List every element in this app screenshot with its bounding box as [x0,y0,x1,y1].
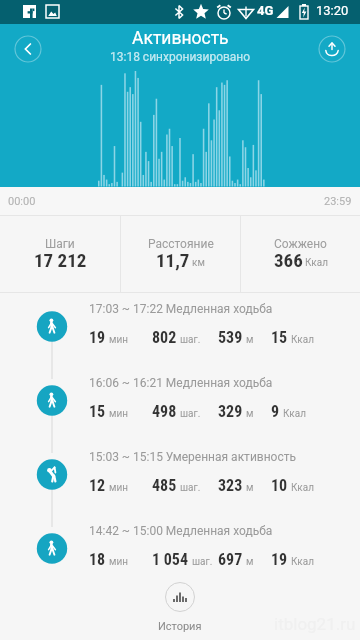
button[interactable]: Расстояние [121,216,240,292]
staticText: 4G [257,3,274,18]
button[interactable]: История [158,582,202,633]
staticText: шаг. [180,408,201,420]
staticText: 19 [89,328,106,347]
button[interactable]: 17:03 ~ 17:22 Медленная ходьба [0,293,360,367]
staticText: 15 [271,328,288,347]
staticText: 14:42 ~ 15:00 Медленная ходьба [89,524,273,538]
staticText: 00:00 [8,195,36,208]
button[interactable]: Back [14,35,42,63]
staticText: мин [109,334,128,346]
button[interactable]: 14:42 ~ 15:00 Медленная ходьба [0,515,360,574]
staticText: История [158,620,202,633]
staticText: шаг. [180,334,201,346]
staticText: 485 [152,476,177,495]
staticText: м [246,482,254,494]
staticText: Ккал [291,556,314,568]
staticText: Шаги [45,237,75,251]
staticText: 1 054 [152,550,189,569]
staticText: Сожжено [274,237,327,251]
staticText: 323 [218,476,243,495]
staticText: 15:03 ~ 15:15 Умеренная активность [89,450,297,464]
staticText: 697 [218,550,243,569]
staticText: 12 [89,476,106,495]
staticText: шаг. [192,556,213,568]
button[interactable]: Sync [318,35,346,63]
staticText: м [246,334,254,346]
staticText: 498 [152,402,177,421]
staticText: 23:59 [324,195,352,208]
staticText: 13:18 синхронизировано [110,50,251,64]
staticText: 11,7 [156,249,190,271]
staticText: 13:20 [316,3,349,18]
staticText: 19 [271,550,288,569]
staticText: Ккал [291,334,314,346]
button[interactable]: Шаги [0,216,120,292]
staticText: м [246,408,254,420]
staticText: 16:06 ~ 16:21 Медленная ходьба [89,376,273,390]
staticText: 15 [89,402,106,421]
staticText: 539 [218,328,243,347]
staticText: км [192,257,205,269]
staticText: Ккал [291,482,314,494]
staticText: мин [109,408,128,420]
staticText: мин [109,482,128,494]
staticText: Ккал [283,408,306,420]
staticText: 18 [89,550,106,569]
staticText: Ккал [305,257,328,269]
button[interactable]: 16:06 ~ 16:21 Медленная ходьба [0,367,360,441]
staticText: 329 [218,402,243,421]
staticText: шаг. [180,482,201,494]
button[interactable]: 15:03 ~ 15:15 Умеренная активность [0,441,360,515]
staticText: Расстояние [148,237,214,251]
staticText: Активность [132,28,229,49]
staticText: 17 212 [34,249,87,271]
staticText: 17:03 ~ 17:22 Медленная ходьба [89,302,273,316]
staticText: 9 [271,402,280,421]
button[interactable]: Сожжено [241,216,360,292]
staticText: 10 [271,476,288,495]
staticText: мин [109,556,128,568]
staticText: 366 [274,249,303,271]
staticText: м [246,556,254,568]
staticText: 802 [152,328,177,347]
